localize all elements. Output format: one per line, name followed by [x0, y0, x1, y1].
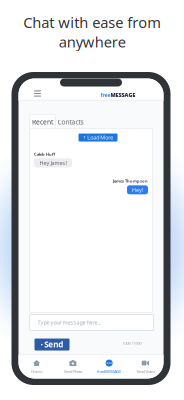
staticText: Hey James! [39, 159, 66, 166]
button[interactable]: ↑ [78, 133, 117, 141]
staticText: Chat with ease from anywhere [23, 12, 161, 51]
button[interactable]: ▾ [34, 338, 69, 350]
staticText: Hey! [132, 186, 143, 193]
staticText: freeMESSAGE [97, 369, 121, 374]
button[interactable]: Contacts [55, 114, 85, 129]
button[interactable]: Recent [29, 114, 55, 129]
button[interactable]: Home [18, 355, 55, 378]
button[interactable]: freeMESSAGE [91, 355, 127, 378]
staticText: free [100, 91, 110, 99]
staticText: ▾ [41, 342, 43, 347]
staticText: Caleb Huff [34, 151, 55, 157]
staticText: Load More [87, 134, 113, 141]
staticText: Type your message here... [37, 319, 100, 326]
button[interactable]: Type your message here... [29, 314, 153, 330]
button[interactable]: Menu [29, 86, 45, 100]
staticText: ↑ [83, 135, 86, 140]
staticText: Send Video [136, 369, 154, 374]
staticText: Send Photo [64, 369, 82, 374]
staticText: Home [31, 369, 42, 374]
staticText: MESSAGE [110, 91, 135, 99]
button[interactable]: Send Photo [55, 355, 91, 378]
staticText: 1000 / 1000 [122, 340, 141, 346]
staticText: Send [44, 339, 63, 350]
staticText: Recent [32, 118, 53, 126]
staticText: Contacts [57, 118, 83, 126]
button[interactable]: Send Video [127, 355, 163, 378]
staticText: James Thompson [113, 178, 148, 184]
